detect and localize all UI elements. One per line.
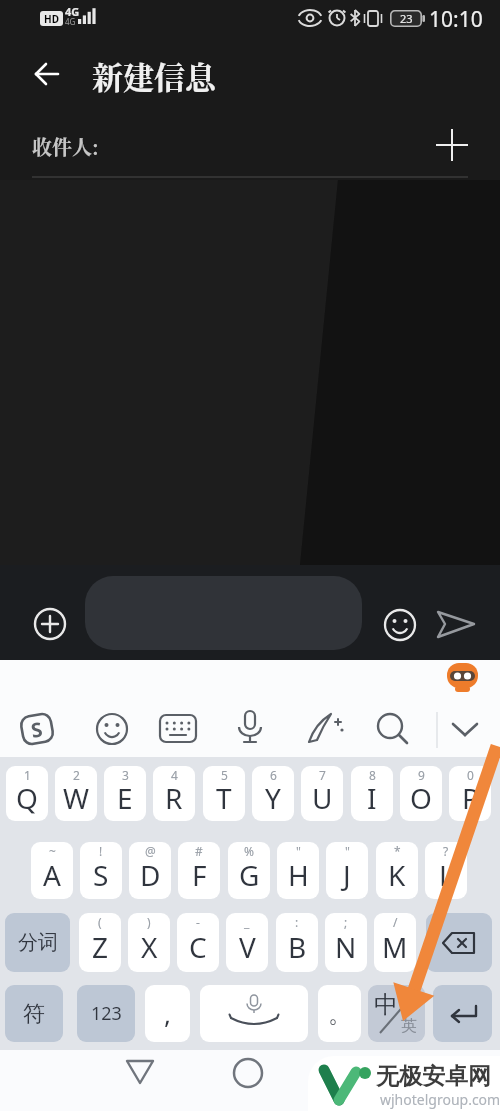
button[interactable]: [449, 720, 481, 740]
button[interactable]: *: [376, 842, 418, 899]
staticText: 中: [374, 990, 398, 1020]
staticText: _: [244, 914, 250, 930]
button[interactable]: [34, 60, 62, 88]
staticText: 5: [221, 767, 228, 783]
button[interactable]: ": [326, 842, 368, 899]
staticText: S: [93, 856, 109, 894]
staticText: ?: [443, 843, 449, 859]
button[interactable]: 6: [252, 766, 294, 821]
button[interactable]: 0: [449, 766, 491, 821]
staticText: K: [388, 856, 406, 894]
button[interactable]: 7: [301, 766, 343, 821]
staticText: 123: [91, 1001, 122, 1026]
button[interactable]: 9: [400, 766, 442, 821]
button[interactable]: [383, 608, 417, 642]
staticText: C: [189, 928, 207, 966]
button[interactable]: [433, 985, 492, 1042]
button[interactable]: _: [226, 913, 268, 972]
button[interactable]: 4: [153, 766, 195, 821]
button[interactable]: [436, 129, 468, 161]
staticText: E: [117, 779, 133, 817]
staticText: L: [439, 856, 454, 894]
staticText: 10:10: [429, 5, 483, 34]
staticText: ,: [164, 996, 171, 1031]
button[interactable]: ,: [145, 985, 190, 1042]
button[interactable]: 3: [104, 766, 146, 821]
staticText: P: [462, 779, 479, 817]
staticText: S: [29, 715, 45, 744]
button[interactable]: 中: [368, 985, 425, 1042]
button[interactable]: %: [228, 842, 270, 899]
staticText: T: [216, 779, 232, 817]
staticText: wjhotelgroup.com: [380, 1090, 500, 1109]
button[interactable]: [236, 710, 264, 748]
button[interactable]: [95, 712, 129, 746]
staticText: I: [367, 779, 377, 817]
staticText: U: [312, 779, 333, 817]
staticText: 。: [328, 999, 352, 1029]
staticText: M: [382, 928, 408, 966]
button[interactable]: 分词: [5, 913, 70, 972]
button[interactable]: ;: [325, 913, 367, 972]
staticText: (: [98, 914, 102, 930]
staticText: 分词: [18, 930, 58, 955]
staticText: *: [394, 843, 401, 859]
staticText: ): [147, 914, 151, 930]
button[interactable]: [305, 710, 345, 748]
staticText: 无极安卓网: [376, 1062, 491, 1091]
staticText: -: [196, 914, 200, 930]
button[interactable]: [200, 985, 308, 1042]
staticText: D: [140, 856, 161, 894]
button[interactable]: 1: [6, 766, 48, 821]
staticText: 新建信息: [92, 53, 216, 98]
staticText: 8: [369, 767, 376, 783]
staticText: J: [343, 856, 351, 894]
button[interactable]: #: [178, 842, 220, 899]
button[interactable]: ?: [425, 842, 467, 899]
button[interactable]: 8: [351, 766, 393, 821]
button[interactable]: /: [374, 913, 416, 972]
staticText: %: [244, 843, 254, 859]
staticText: @: [145, 843, 156, 859]
staticText: 3: [122, 767, 129, 783]
button[interactable]: S: [15, 707, 59, 751]
staticText: ": [296, 843, 301, 859]
button[interactable]: 2: [55, 766, 97, 821]
button[interactable]: @: [129, 842, 171, 899]
staticText: 英: [401, 1016, 417, 1036]
button[interactable]: [233, 1058, 263, 1088]
button[interactable]: 5: [203, 766, 245, 821]
staticText: :: [295, 914, 299, 930]
staticText: ~: [49, 843, 56, 859]
staticText: Z: [92, 928, 109, 966]
staticText: #: [195, 843, 203, 859]
button[interactable]: ~: [31, 842, 73, 899]
staticText: H: [288, 856, 309, 894]
button[interactable]: [426, 913, 492, 972]
staticText: HD: [44, 12, 59, 26]
button[interactable]: [85, 576, 362, 650]
button[interactable]: [375, 712, 411, 748]
staticText: 收件人:: [32, 132, 99, 161]
button[interactable]: -: [177, 913, 219, 972]
button[interactable]: 。: [318, 985, 361, 1042]
staticText: ": [345, 843, 350, 859]
staticText: V: [239, 928, 256, 966]
button[interactable]: [33, 607, 67, 641]
button[interactable]: :: [276, 913, 318, 972]
button[interactable]: 符: [5, 985, 63, 1042]
button[interactable]: 123: [77, 985, 135, 1042]
staticText: 2: [73, 767, 80, 783]
button[interactable]: [436, 606, 476, 642]
staticText: Y: [265, 779, 281, 817]
staticText: !: [99, 843, 103, 859]
staticText: 0: [467, 767, 474, 783]
button[interactable]: ": [277, 842, 319, 899]
button[interactable]: (: [79, 913, 121, 972]
staticText: /: [393, 914, 398, 930]
button[interactable]: !: [80, 842, 122, 899]
staticText: R: [165, 779, 183, 817]
button[interactable]: [124, 1058, 156, 1086]
button[interactable]: [159, 714, 197, 744]
button[interactable]: ): [128, 913, 170, 972]
